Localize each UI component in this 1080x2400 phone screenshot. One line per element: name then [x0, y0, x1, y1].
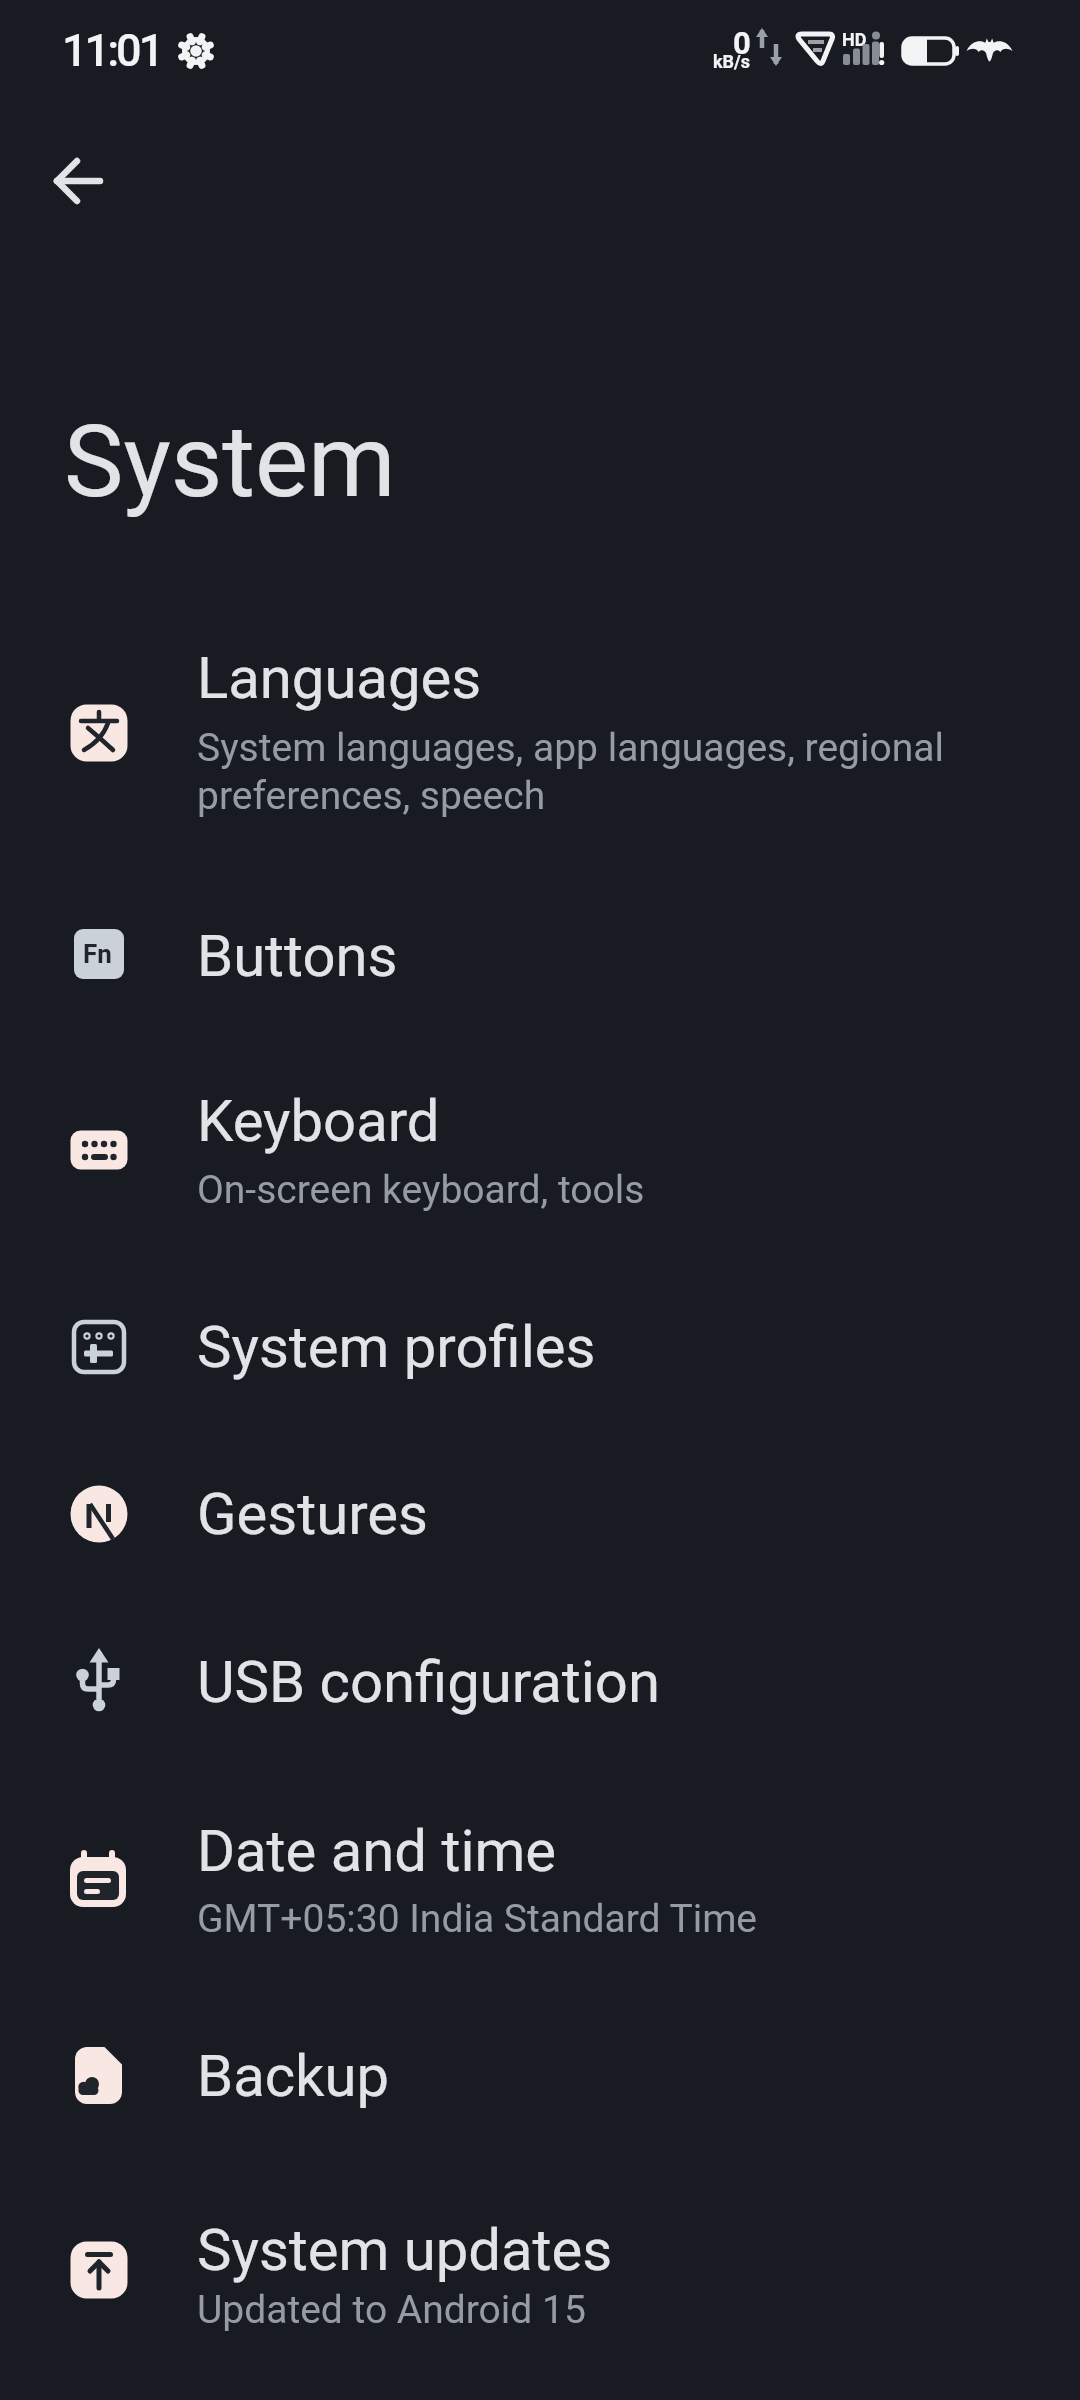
button[interactable]: System updates	[0, 2155, 1080, 2385]
staticText: System	[64, 403, 396, 520]
staticText: Backup	[197, 2042, 389, 2110]
button[interactable]: Fn	[0, 873, 1080, 1041]
staticText: Updated to Android 15	[197, 2287, 586, 2333]
staticText: Buttons	[197, 922, 398, 990]
staticText: GMT+05:30 India Standard Time	[197, 1896, 758, 1942]
staticText: preferences, speech	[197, 773, 546, 819]
staticText: Fn	[83, 939, 112, 969]
staticText: System languages, app languages, regiona…	[197, 725, 944, 771]
staticText: System profiles	[197, 1313, 596, 1381]
button[interactable]: Keyboard	[0, 1041, 1080, 1259]
staticText: HD	[842, 29, 867, 50]
button[interactable]: USB configuration	[0, 1597, 1080, 1767]
staticText: 11:01	[62, 24, 162, 77]
staticText: 0	[733, 25, 751, 61]
button[interactable]: Backup	[0, 1997, 1080, 2155]
staticText: kB/s	[713, 51, 751, 72]
staticText: Languages	[197, 644, 482, 712]
staticText: On-screen keyboard, tools	[197, 1167, 645, 1213]
staticText: Keyboard	[197, 1087, 440, 1155]
button[interactable]: Languages	[0, 593, 1080, 873]
staticText: USB configuration	[197, 1648, 660, 1716]
button[interactable]	[43, 147, 111, 215]
staticText: System updates	[197, 2216, 613, 2284]
button[interactable]: Gestures	[0, 1431, 1080, 1597]
staticText: Gestures	[197, 1480, 428, 1548]
button[interactable]: System profiles	[0, 1259, 1080, 1431]
button[interactable]: Date and time	[0, 1767, 1080, 1997]
staticText: Date and time	[197, 1817, 557, 1885]
